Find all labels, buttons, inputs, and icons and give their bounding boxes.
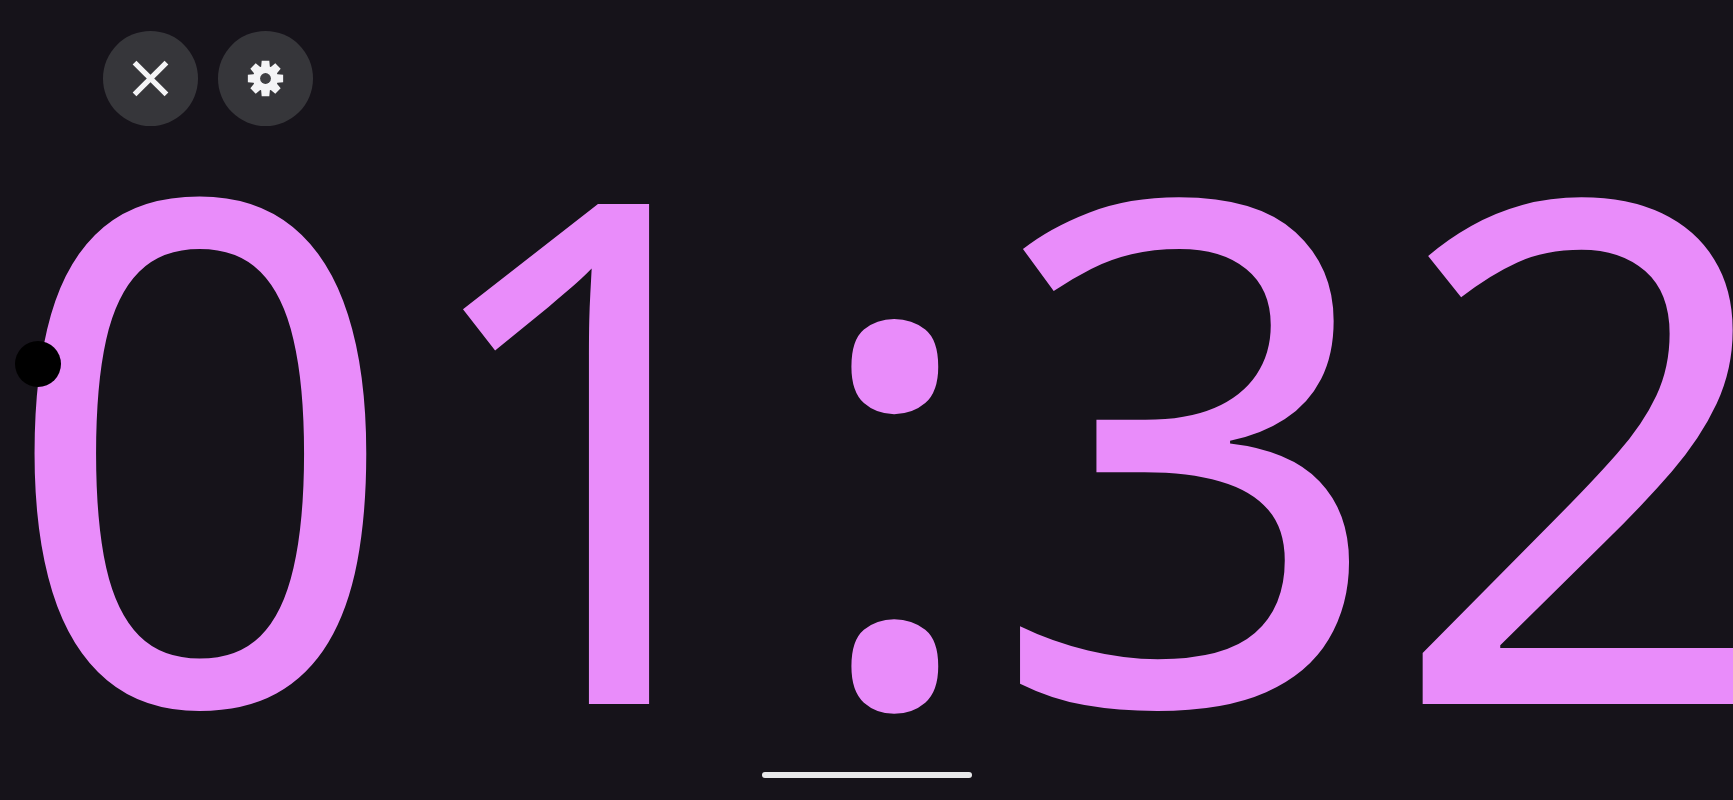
button[interactable]: Settings: [218, 31, 313, 126]
button[interactable]: Close: [103, 31, 198, 126]
staticText: 01:32:19: [0, 0, 1733, 756]
